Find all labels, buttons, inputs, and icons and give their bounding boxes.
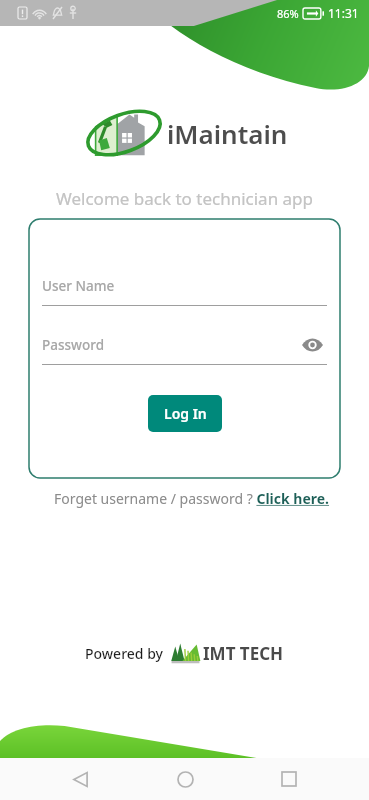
button[interactable]: Back xyxy=(56,758,104,800)
button[interactable]: Forget username / password ? Click here. xyxy=(54,489,330,508)
staticText: Welcome back to technician app xyxy=(56,187,314,210)
staticText: 86% xyxy=(277,6,299,21)
button[interactable]: Log In xyxy=(148,395,222,432)
button[interactable]: Recent apps xyxy=(265,758,313,800)
button[interactable]: Show password xyxy=(297,330,327,360)
staticText: Log In xyxy=(164,404,207,423)
button[interactable]: Password xyxy=(42,326,327,364)
staticText: Password xyxy=(42,336,105,354)
button[interactable]: User Name xyxy=(42,267,327,305)
button[interactable]: Home xyxy=(161,758,209,800)
staticText: Powered by xyxy=(85,644,163,663)
staticText: IMT TECH xyxy=(203,642,284,665)
staticText: iMaintain xyxy=(167,116,288,151)
staticText: User Name xyxy=(42,277,115,295)
staticText: 11:31 xyxy=(328,5,359,21)
